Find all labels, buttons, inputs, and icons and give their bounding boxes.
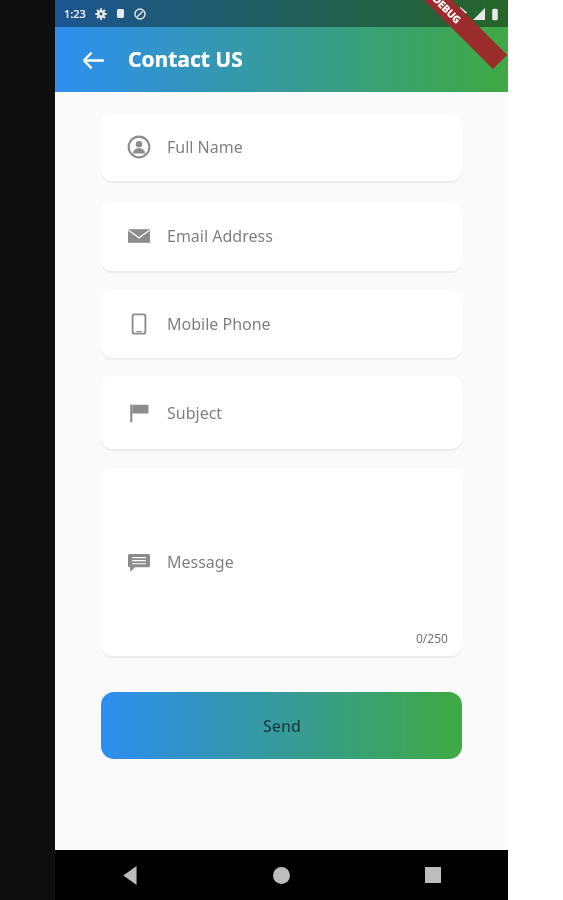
staticText: Subject [167, 402, 223, 424]
staticText: Send [263, 715, 301, 737]
button[interactable]: Message [101, 468, 462, 656]
staticText: Mobile Phone [167, 313, 271, 335]
button[interactable]: Back [55, 850, 206, 900]
staticText: Contact US [128, 45, 243, 74]
staticText: Full Name [167, 136, 243, 158]
button[interactable]: Send [101, 692, 462, 759]
staticText: DEBUG [430, 0, 465, 27]
button[interactable]: Full Name [101, 113, 462, 181]
button[interactable]: Subject [101, 376, 462, 449]
button[interactable]: Home [206, 850, 357, 900]
staticText: 1:23 [64, 6, 86, 21]
staticText: Email Address [167, 225, 273, 247]
staticText: Message [167, 551, 234, 573]
button[interactable]: Back [72, 39, 114, 81]
button[interactable]: Recent apps [357, 850, 508, 900]
button[interactable]: Mobile Phone [101, 290, 462, 358]
button[interactable]: Email Address [101, 201, 462, 271]
staticText: 0/250 [416, 630, 448, 646]
